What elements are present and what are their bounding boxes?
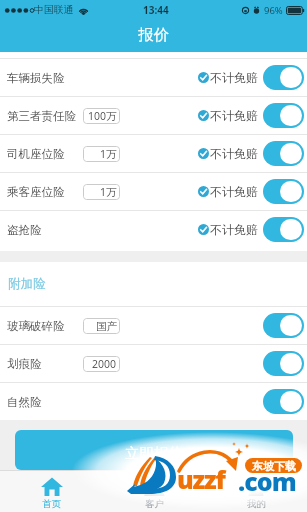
button[interactable]: 2000	[83, 356, 120, 372]
staticText: 首页	[42, 498, 61, 510]
staticText: 司机座位险	[7, 147, 65, 161]
button[interactable]: 不计免赔	[198, 184, 258, 199]
button[interactable]: Toggle on	[263, 217, 304, 242]
staticText: 车辆损失险	[7, 71, 65, 85]
button[interactable]: 1万	[83, 146, 120, 162]
button[interactable]: 司机座位险	[0, 135, 307, 173]
staticText: 1万	[100, 147, 117, 161]
button[interactable]: 不计免赔	[198, 70, 258, 85]
button[interactable]: 1万	[83, 184, 120, 200]
staticText: 玻璃破碎险	[7, 319, 65, 333]
staticText: .com	[238, 464, 296, 498]
button[interactable]: Toggle on	[263, 313, 304, 338]
staticText: 乘客座位险	[7, 185, 65, 199]
staticText: 1万	[100, 185, 117, 199]
button[interactable]: 划痕险	[0, 345, 307, 383]
button[interactable]: 国产	[83, 318, 120, 334]
button[interactable]: Toggle on	[263, 351, 304, 376]
staticText: 国产	[96, 320, 117, 333]
button[interactable]: 我的	[205, 471, 307, 512]
staticText: 2000	[92, 357, 117, 371]
staticText: 不计免赔	[210, 184, 258, 199]
staticText: 附加险	[8, 276, 46, 292]
staticText: 中国联通	[34, 4, 74, 16]
staticText: 不计免赔	[210, 108, 258, 123]
staticText: 96%	[264, 4, 283, 17]
button[interactable]: 盗抢险	[0, 211, 307, 248]
staticText: 13:44	[143, 3, 169, 17]
staticText: 立即报价	[125, 444, 183, 462]
button[interactable]: 乘客座位险	[0, 173, 307, 211]
staticText: 不计免赔	[210, 146, 258, 161]
button[interactable]: 不计免赔	[198, 222, 258, 237]
button[interactable]: 立即报价	[15, 430, 293, 470]
staticText: 客户	[145, 498, 164, 510]
button[interactable]: 车辆损失险	[0, 59, 307, 97]
staticText: uzzf	[177, 462, 225, 496]
button[interactable]: Toggle on	[263, 65, 304, 90]
staticText: 东坡下载	[252, 459, 296, 473]
button[interactable]: 玻璃破碎险	[0, 307, 307, 345]
button[interactable]: 客户	[103, 471, 205, 512]
staticText: 报价	[138, 25, 169, 45]
staticText: 100万	[88, 109, 117, 123]
button[interactable]: 100万	[83, 108, 120, 124]
button[interactable]: Toggle on	[263, 389, 304, 414]
staticText: 我的	[247, 498, 266, 510]
button[interactable]: 第三者责任险	[0, 97, 307, 135]
button[interactable]: 不计免赔	[198, 146, 258, 161]
button[interactable]: Toggle on	[263, 103, 304, 128]
staticText: 第三者责任险	[7, 109, 76, 123]
button[interactable]: Toggle on	[263, 179, 304, 204]
staticText: 自然险	[7, 395, 42, 409]
button[interactable]: Toggle on	[263, 141, 304, 166]
button[interactable]: 首页	[0, 471, 103, 512]
staticText: 划痕险	[7, 357, 42, 371]
button[interactable]: 自然险	[0, 383, 307, 420]
staticText: 盗抢险	[7, 223, 42, 237]
staticText: 不计免赔	[210, 222, 258, 237]
staticText: 不计免赔	[210, 70, 258, 85]
button[interactable]: 不计免赔	[198, 108, 258, 123]
